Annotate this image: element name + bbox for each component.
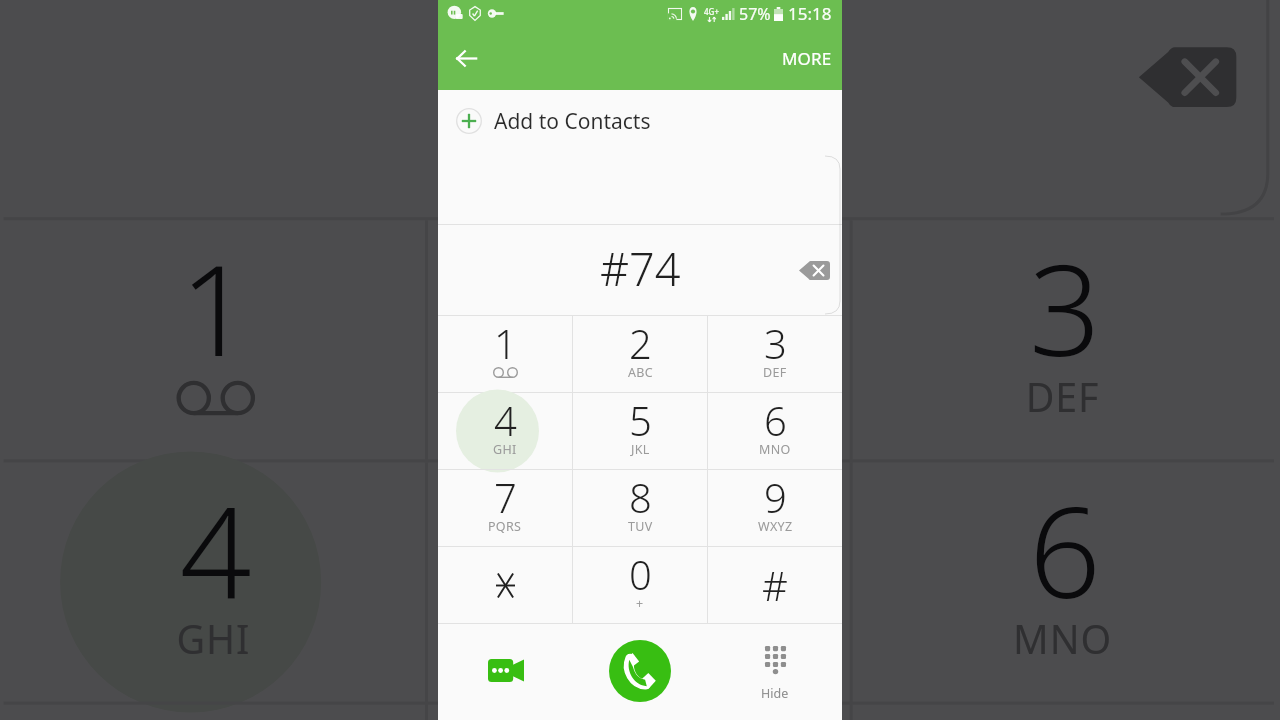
- staticText: 6: [764, 393, 787, 447]
- button[interactable]: 6: [708, 393, 842, 470]
- button[interactable]: 6: [853, 462, 1274, 705]
- button[interactable]: 8: [573, 470, 707, 547]
- staticText: 5: [604, 462, 676, 632]
- staticText: JKL: [631, 441, 650, 458]
- staticText: ABC: [601, 371, 680, 425]
- button[interactable]: 3: [708, 316, 842, 393]
- button[interactable]: [438, 547, 572, 624]
- staticText: 4G+: [704, 6, 719, 17]
- staticText: 57%: [739, 3, 771, 25]
- button[interactable]: Hide keypad: [707, 624, 842, 720]
- staticText: 0: [629, 547, 652, 601]
- staticText: #: [762, 558, 788, 612]
- button[interactable]: 2: [428, 220, 849, 462]
- staticText: 5: [629, 393, 652, 447]
- button[interactable]: Add to Contacts: [438, 90, 842, 152]
- staticText: 9: [764, 470, 787, 524]
- staticText: 15:18: [788, 2, 832, 25]
- staticText: 4: [180, 462, 252, 632]
- staticText: 4: [494, 393, 517, 447]
- button[interactable]: 8: [428, 705, 849, 720]
- staticText: +: [636, 595, 644, 612]
- staticText: MORE: [782, 47, 832, 70]
- staticText: 3: [1029, 220, 1101, 390]
- button[interactable]: 3: [853, 220, 1274, 462]
- staticText: Add to Contacts: [494, 107, 651, 136]
- staticText: #74: [600, 238, 681, 299]
- staticText: 3: [764, 316, 787, 370]
- staticText: 8: [629, 470, 652, 524]
- button[interactable]: Backspace: [790, 246, 838, 294]
- button[interactable]: Back: [438, 30, 494, 86]
- staticText: ABC: [628, 364, 653, 381]
- button[interactable]: Video call: [438, 624, 572, 720]
- button[interactable]: 5: [428, 462, 849, 705]
- staticText: PQRS: [488, 518, 522, 535]
- button[interactable]: 5: [573, 393, 707, 470]
- staticText: 2: [629, 316, 652, 370]
- staticText: 2: [604, 220, 676, 390]
- button[interactable]: 2: [573, 316, 707, 393]
- staticText: JKL: [610, 613, 670, 667]
- staticText: DEF: [1026, 371, 1101, 425]
- staticText: 1: [180, 220, 252, 390]
- button[interactable]: Call: [609, 640, 671, 702]
- button[interactable]: MORE: [768, 35, 842, 82]
- staticText: GHI: [176, 613, 252, 667]
- staticText: GHI: [493, 441, 517, 458]
- staticText: MNO: [759, 441, 791, 458]
- staticText: #74: [513, 0, 768, 167]
- button[interactable]: 0: [573, 547, 707, 624]
- button[interactable]: Backspace: [1110, 0, 1261, 151]
- staticText: 7: [180, 705, 252, 720]
- staticText: DEF: [763, 364, 787, 381]
- button[interactable]: 1: [438, 316, 572, 393]
- staticText: TUV: [628, 518, 653, 535]
- button[interactable]: 9: [708, 470, 842, 547]
- button[interactable]: 7: [438, 470, 572, 547]
- button[interactable]: 4: [438, 393, 572, 470]
- staticText: 7: [494, 470, 517, 524]
- staticText: Hide: [761, 685, 789, 702]
- staticText: MNO: [1013, 613, 1114, 667]
- staticText: WXYZ: [758, 518, 793, 535]
- button[interactable]: 4: [3, 462, 425, 705]
- staticText: 6: [1029, 462, 1101, 632]
- staticText: 1: [494, 316, 517, 370]
- button[interactable]: #: [708, 547, 842, 624]
- button[interactable]: 1: [3, 220, 425, 462]
